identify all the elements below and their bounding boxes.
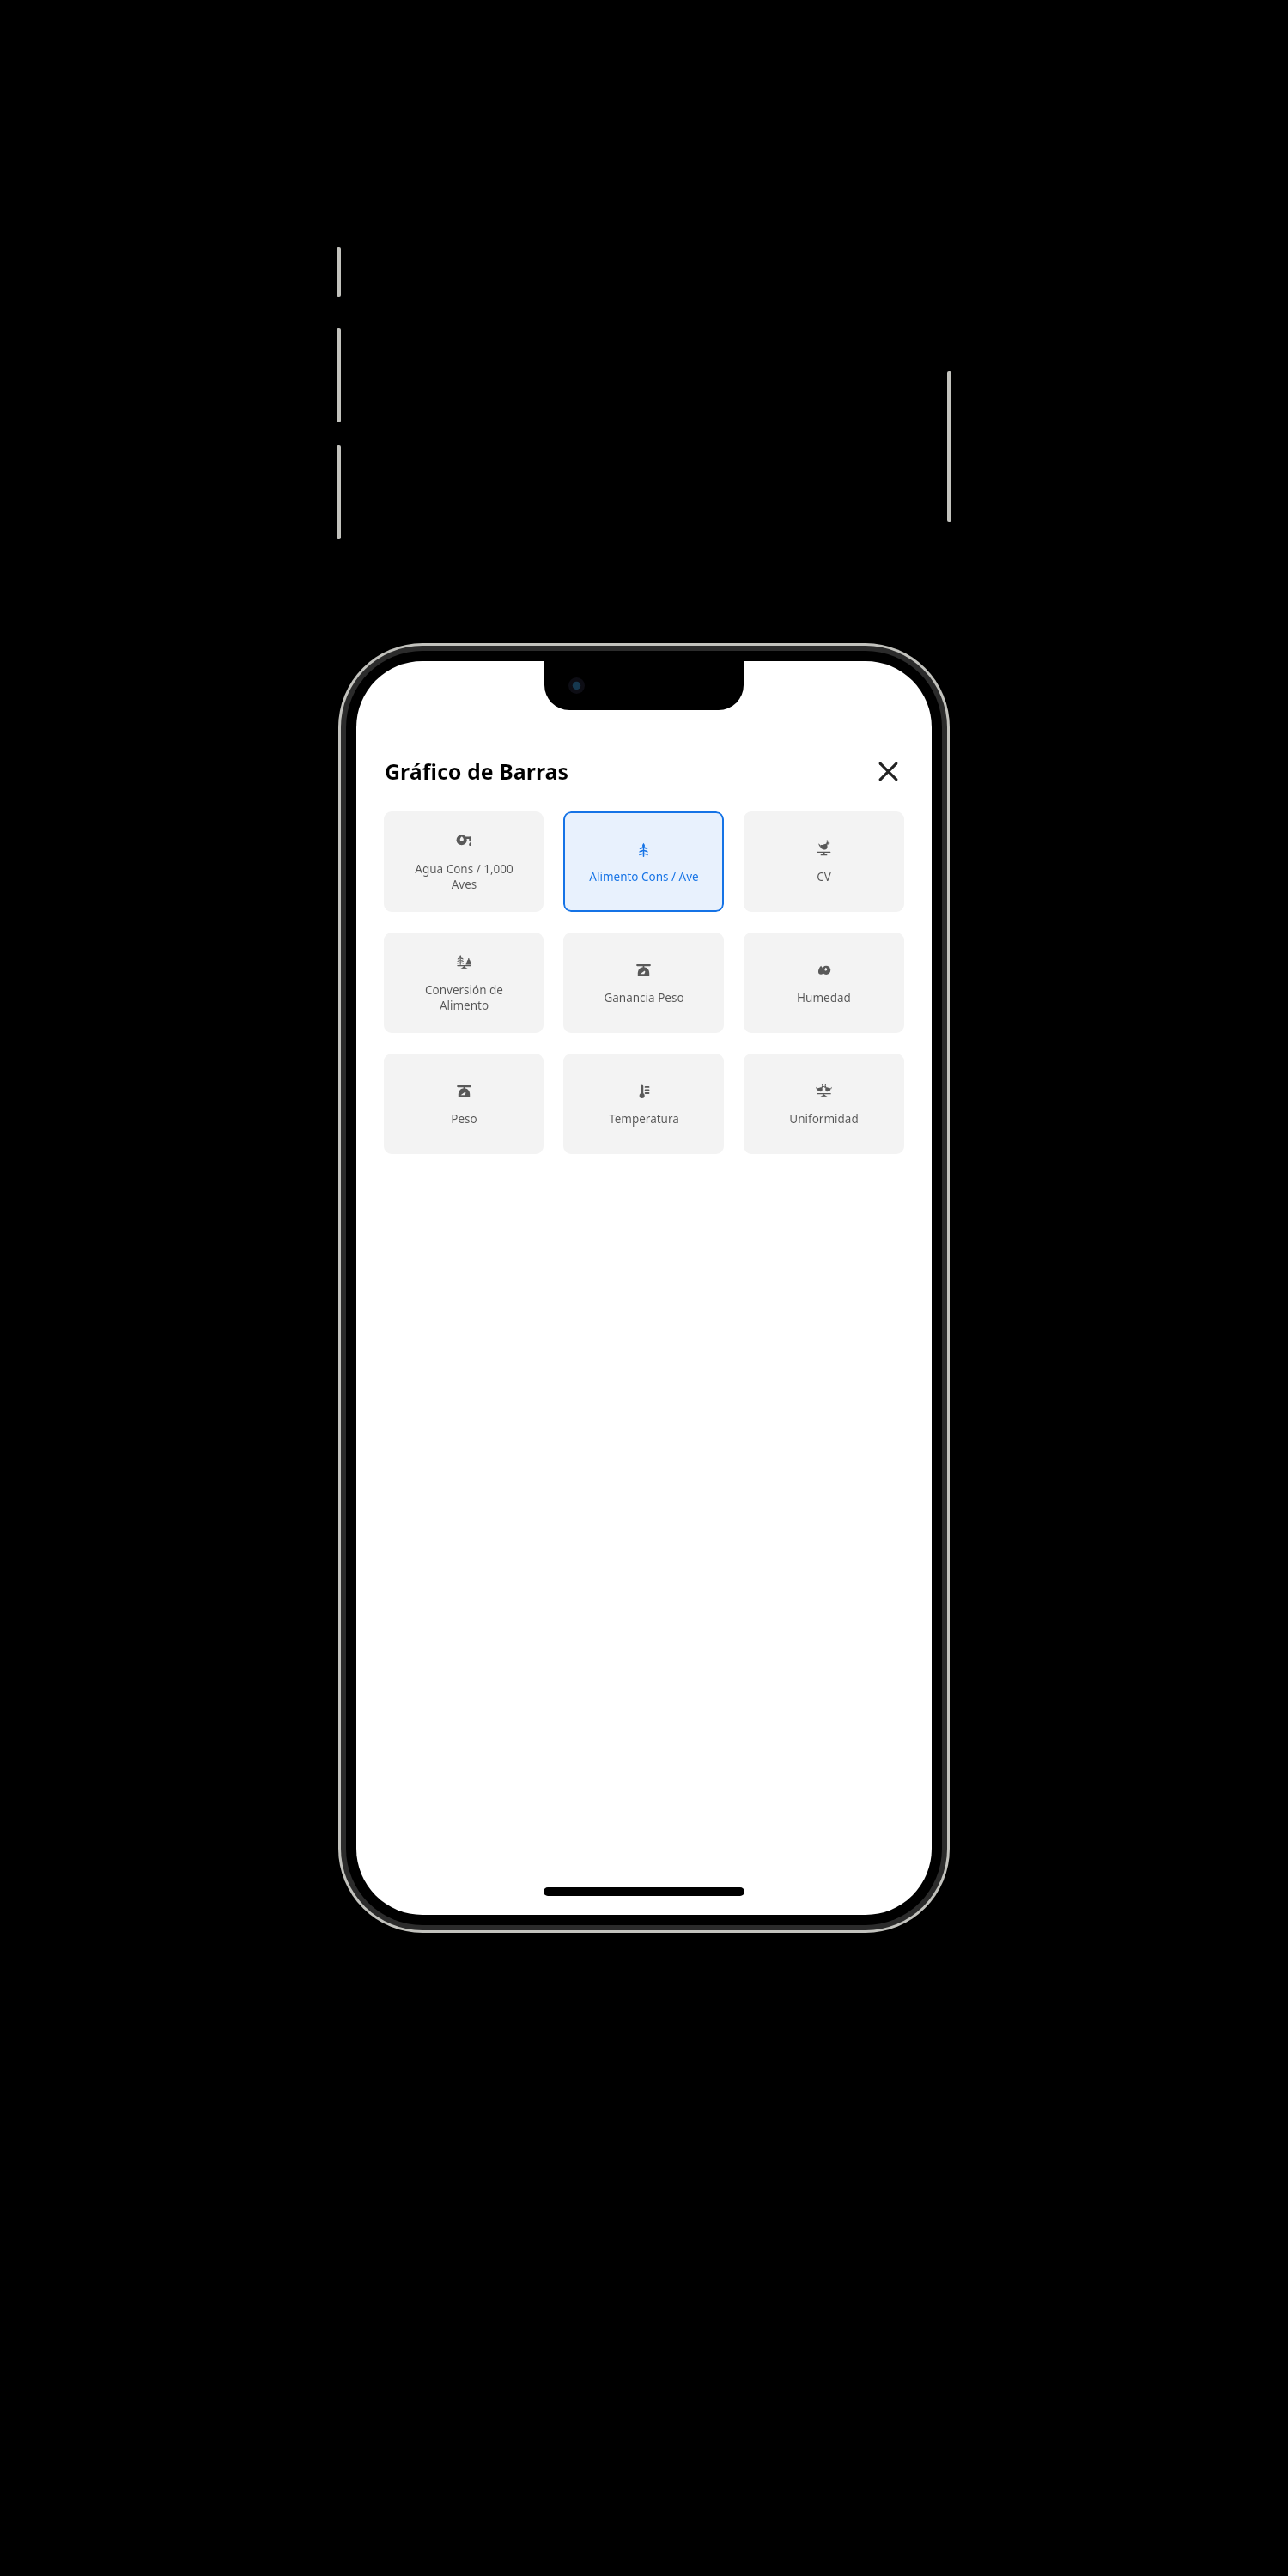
button[interactable]: Conversión de Alimento: [384, 933, 544, 1033]
button[interactable]: Ganancia Peso: [563, 933, 724, 1033]
staticText: CV: [817, 869, 831, 884]
staticText: Temperatura: [609, 1111, 679, 1127]
staticText: Gráfico de Barras: [385, 756, 569, 786]
button[interactable]: Humedad: [744, 933, 904, 1033]
button[interactable]: Peso: [384, 1054, 544, 1154]
staticText: Conversión de Alimento: [425, 982, 503, 1013]
button[interactable]: Temperatura: [563, 1054, 724, 1154]
button[interactable]: Alimento Cons / Ave: [563, 811, 724, 912]
button[interactable]: Agua Cons / 1,000 Aves: [384, 811, 544, 912]
staticText: Alimento Cons / Ave: [589, 869, 699, 884]
staticText: Ganancia Peso: [604, 990, 684, 1005]
staticText: Uniformidad: [789, 1111, 859, 1127]
staticText: Agua Cons / 1,000 Aves: [415, 861, 513, 892]
button[interactable]: Uniformidad: [744, 1054, 904, 1154]
staticText: Humedad: [797, 990, 851, 1005]
button[interactable]: Cerrar: [868, 751, 908, 791]
button[interactable]: CV: [744, 811, 904, 912]
staticText: Peso: [451, 1111, 477, 1127]
